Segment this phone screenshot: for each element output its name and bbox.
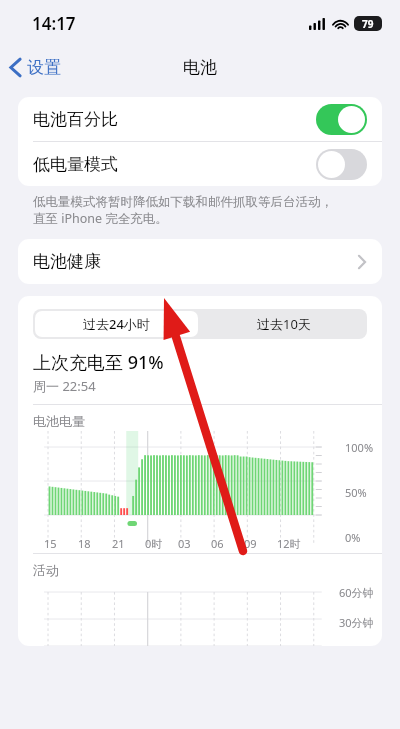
staticText: 活动 bbox=[33, 562, 59, 578]
staticText: 低电量模式将暂时降低如下载和邮件抓取等后台活动， 直至 iPhone 完全充电。 bbox=[33, 194, 333, 227]
staticText: 电池 bbox=[183, 57, 217, 78]
staticText: 18 bbox=[78, 536, 112, 551]
staticText: 过去24小时 bbox=[83, 315, 150, 333]
staticText: 100% bbox=[345, 440, 374, 455]
staticText: 14:17 bbox=[32, 12, 76, 35]
button[interactable]: 电池百分比 bbox=[18, 97, 382, 141]
staticText: 低电量模式 bbox=[33, 154, 316, 175]
staticText: 0% bbox=[345, 530, 361, 545]
button[interactable]: 过去10天 bbox=[200, 309, 367, 339]
staticText: 30分钟 bbox=[339, 615, 374, 630]
button[interactable]: 低电量模式 bbox=[18, 142, 382, 186]
staticText: 79 bbox=[362, 17, 374, 31]
staticText: 50% bbox=[345, 485, 367, 500]
staticText: 电池百分比 bbox=[33, 109, 316, 130]
staticText: 21 bbox=[112, 536, 145, 551]
staticText: 60分钟 bbox=[339, 585, 374, 600]
staticText: 06 bbox=[211, 536, 244, 551]
staticText: 过去10天 bbox=[257, 315, 311, 333]
staticText: 电池健康 bbox=[33, 251, 358, 272]
button[interactable]: 设置 bbox=[0, 53, 71, 82]
staticText: 15 bbox=[44, 536, 78, 551]
staticText: 09 bbox=[244, 536, 277, 551]
button[interactable]: 电池健康 bbox=[18, 239, 382, 284]
staticText: 12时 bbox=[277, 536, 310, 551]
staticText: 电池电量 bbox=[33, 413, 85, 429]
staticText: 0时 bbox=[145, 536, 178, 551]
staticText: 设置 bbox=[27, 57, 61, 78]
button[interactable]: 过去24小时 bbox=[35, 311, 198, 337]
staticText: 周一 22:54 bbox=[33, 377, 96, 395]
staticText: 03 bbox=[178, 536, 211, 551]
staticText: 上次充电至 91% bbox=[33, 350, 164, 375]
